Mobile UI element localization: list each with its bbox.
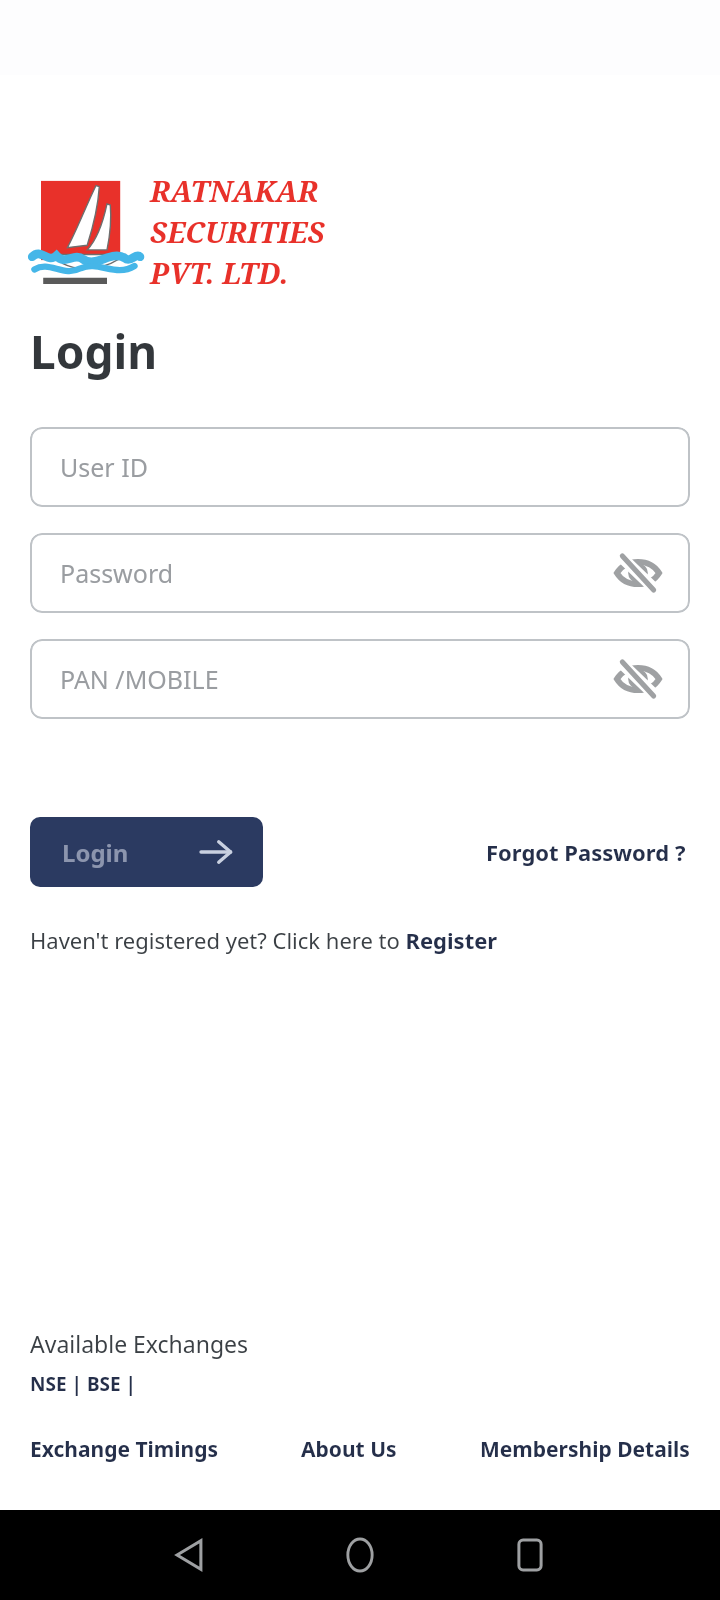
staticText: PAN /MOBILE bbox=[60, 662, 219, 696]
staticText: Login bbox=[30, 320, 158, 383]
staticText: Exchange Timings bbox=[30, 1435, 219, 1464]
button[interactable]: User ID bbox=[30, 427, 690, 507]
staticText: About Us bbox=[301, 1435, 397, 1464]
button[interactable]: Show password bbox=[612, 653, 664, 705]
button[interactable]: Password bbox=[30, 533, 690, 613]
staticText: SECURITIES bbox=[150, 212, 325, 251]
button[interactable]: Haven't registered yet? Click here to Re… bbox=[30, 925, 498, 955]
staticText: Password bbox=[60, 556, 174, 590]
button[interactable]: Forgot Password ? bbox=[482, 833, 690, 871]
button[interactable]: Exchange Timings bbox=[30, 1431, 219, 1468]
button[interactable]: Login bbox=[30, 817, 263, 887]
staticText: Forgot Password ? bbox=[486, 837, 686, 867]
staticText: User ID bbox=[60, 450, 148, 484]
staticText: NSE | BSE | bbox=[30, 1371, 137, 1397]
button[interactable]: About Us bbox=[301, 1431, 397, 1468]
button[interactable]: Recent apps bbox=[445, 1510, 615, 1600]
button[interactable]: Back bbox=[105, 1510, 275, 1600]
staticText: PVT. LTD. bbox=[150, 253, 289, 292]
staticText: RATNAKAR bbox=[150, 171, 319, 210]
staticText: Membership Details bbox=[480, 1435, 690, 1464]
staticText: Login bbox=[62, 836, 129, 869]
button[interactable]: Home bbox=[275, 1510, 445, 1600]
staticText: Haven't registered yet? Click here to Re… bbox=[30, 925, 498, 955]
staticText: Available Exchanges bbox=[30, 1328, 249, 1359]
button[interactable]: PAN /MOBILE bbox=[30, 639, 690, 719]
button[interactable]: Show password bbox=[612, 547, 664, 599]
button[interactable]: Membership Details bbox=[480, 1431, 690, 1468]
